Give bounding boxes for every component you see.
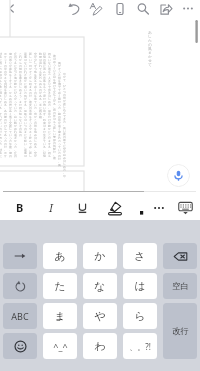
button[interactable]: Backspace bbox=[163, 243, 197, 269]
button[interactable]: Underline bbox=[73, 198, 92, 217]
button[interactable]: 空白 bbox=[163, 273, 197, 299]
other: Emoji bbox=[14, 340, 27, 353]
staticText: I bbox=[49, 200, 54, 215]
button[interactable]: ABC bbox=[3, 303, 37, 329]
button[interactable]: Voice input bbox=[167, 164, 190, 187]
button[interactable]: Bold bbox=[10, 198, 29, 217]
button[interactable]: Hide keyboard bbox=[176, 198, 195, 217]
button[interactable]: Undo bbox=[65, 0, 82, 17]
staticText: ^_^ bbox=[53, 340, 68, 352]
button[interactable]: More formatting bbox=[149, 198, 168, 217]
staticText: 記憶の底に沈んだ言葉をもう一度だけ思い出す。約束はまだ生きている。記憶 bbox=[43, 52, 46, 157]
staticText: ま bbox=[54, 309, 66, 323]
button[interactable]: Edit text bbox=[87, 0, 104, 17]
other: Next candidate bbox=[13, 249, 27, 263]
button[interactable]: や bbox=[83, 303, 117, 329]
button[interactable]: な bbox=[83, 273, 117, 299]
staticText: は bbox=[134, 279, 146, 293]
button[interactable]: More options bbox=[179, 0, 196, 17]
button[interactable]: た bbox=[43, 273, 77, 299]
staticText: 返事はないけれど確かに届いた気がする。足取りはいつのまにか軽い。返事は bbox=[24, 52, 27, 157]
staticText: 空白 bbox=[172, 281, 189, 292]
staticText: さ bbox=[134, 249, 146, 263]
other: Undo bbox=[14, 280, 27, 293]
other: Backspace bbox=[173, 249, 188, 264]
staticText: 改行 bbox=[172, 326, 189, 337]
button[interactable]: Italic bbox=[42, 198, 61, 217]
button[interactable]: Back bbox=[3, 0, 20, 17]
staticText: 、。?! bbox=[129, 341, 151, 352]
staticText: あ bbox=[54, 249, 66, 263]
staticText: B bbox=[16, 200, 24, 215]
button[interactable]: わ bbox=[83, 333, 117, 359]
button[interactable]: ^_^ bbox=[43, 333, 77, 359]
staticText: ら bbox=[134, 309, 146, 323]
staticText: やがて、ひとつの光が差し込んできた。長い夜の果てに空が白みはじめた。や bbox=[63, 72, 66, 177]
staticText: 風がそっと頬を撫でてゆく朝だった。鐘の音が遠く響きわたっていたのだ。風 bbox=[58, 61, 61, 166]
staticText: な bbox=[94, 279, 106, 293]
button[interactable]: Search bbox=[134, 0, 151, 17]
staticText: 丘のうえに立つと海が静かにひろがっていた。白い帆がゆれ遠ざかった。丘の bbox=[14, 52, 17, 157]
button[interactable]: か bbox=[83, 243, 117, 269]
staticText: わ bbox=[94, 339, 106, 353]
button[interactable]: Emoji bbox=[3, 333, 37, 359]
staticText: まかせて bbox=[148, 50, 152, 67]
staticText: あしたの風 bbox=[148, 30, 152, 51]
staticText: 彼はゆっくりと目を開けて立ち上がる。窓の外はもう新しい季節の気配だ。彼 bbox=[53, 54, 56, 159]
staticText: 砂浜に残した足跡はもう波に消されている。それでいいのだと思った。砂浜に bbox=[0, 52, 2, 157]
button[interactable]: は bbox=[123, 273, 157, 299]
staticText: 時間は流れても変わらぬものがある。手に残る確 bbox=[39, 52, 42, 118]
staticText: 新しい一日がそこから始まるのだ。彼女の名前をそっと小さく呼んでみ。新し bbox=[29, 52, 32, 157]
button[interactable]: ま bbox=[43, 303, 77, 329]
staticText: や bbox=[94, 309, 106, 323]
button[interactable]: 改行 bbox=[163, 303, 197, 359]
button[interactable]: あ bbox=[43, 243, 77, 269]
staticText: 誰もいない道を一人きりで歩きはじめた。足音だけが静かにこだまする。誰も bbox=[48, 52, 51, 157]
staticText: これからの物語を書きはじめよう。まだ誰も知らないその先の bbox=[19, 52, 22, 136]
button[interactable]: Undo bbox=[3, 273, 37, 299]
button[interactable]: Share bbox=[157, 0, 174, 17]
button[interactable]: ら bbox=[123, 303, 157, 329]
button[interactable]: Highlight bbox=[105, 198, 124, 217]
button[interactable]: Next candidate bbox=[3, 243, 37, 269]
staticText: た bbox=[54, 279, 66, 293]
button[interactable]: 、。?! bbox=[123, 333, 157, 359]
staticText: 潮の香りが鼻先をくすぐる。かもめの声が高く低く交差していった午後。潮の bbox=[9, 52, 12, 157]
button[interactable]: さ bbox=[123, 243, 157, 269]
staticText: ABC bbox=[11, 310, 29, 322]
staticText: ポケットの中の小さな貝殻を握りしめる。あの夏のかけらであったのだ。ポケ bbox=[4, 52, 7, 157]
staticText: 空が少しずつ色を変えてゆくのを見ていた。光がこの街を包みはじめる。空が bbox=[34, 52, 37, 157]
staticText: か bbox=[94, 249, 106, 263]
button[interactable]: Device preview bbox=[111, 0, 128, 17]
